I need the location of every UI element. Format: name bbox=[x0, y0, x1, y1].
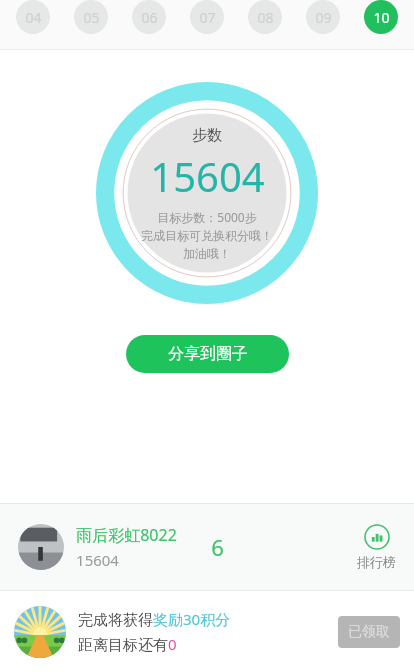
staticText: 07 bbox=[199, 8, 216, 27]
button[interactable]: 07 bbox=[190, 0, 224, 34]
staticText: 04 bbox=[25, 8, 42, 27]
staticText: 雨后彩虹8022 bbox=[76, 524, 177, 546]
staticText: 15604 bbox=[76, 550, 119, 570]
button[interactable]: 06 bbox=[132, 0, 166, 34]
button[interactable]: 10 bbox=[364, 0, 398, 34]
staticText: 分享到圈子 bbox=[168, 344, 248, 364]
staticText: 距离目标还有0 bbox=[78, 634, 177, 654]
staticText: 完成将获得奖励30积分 bbox=[78, 609, 231, 629]
button[interactable]: 04 bbox=[16, 0, 50, 34]
staticText: 6 bbox=[211, 532, 224, 562]
staticText: 完成目标可兑换积分哦！ bbox=[141, 228, 273, 243]
button[interactable]: 雨后彩虹8022 bbox=[0, 504, 414, 590]
staticText: 已领取 bbox=[348, 623, 390, 641]
staticText: 目标步数：5000步 bbox=[157, 209, 257, 225]
button[interactable]: 分享到圈子 bbox=[126, 335, 289, 373]
button[interactable]: 完成将获得奖励30积分 bbox=[0, 591, 414, 672]
staticText: 06 bbox=[141, 8, 158, 27]
button[interactable]: 09 bbox=[306, 0, 340, 34]
button[interactable]: 排行榜 bbox=[357, 524, 396, 570]
button[interactable]: 05 bbox=[74, 0, 108, 34]
button[interactable]: 已领取 bbox=[338, 616, 400, 648]
button[interactable]: 08 bbox=[248, 0, 282, 34]
staticText: 05 bbox=[83, 8, 100, 27]
staticText: 排行榜 bbox=[357, 554, 396, 570]
staticText: 加油哦！ bbox=[183, 246, 231, 261]
staticText: 步数 bbox=[192, 126, 222, 145]
staticText: 15604 bbox=[150, 149, 265, 203]
staticText: 09 bbox=[315, 8, 332, 27]
staticText: 08 bbox=[257, 8, 274, 27]
staticText: 10 bbox=[373, 8, 390, 27]
